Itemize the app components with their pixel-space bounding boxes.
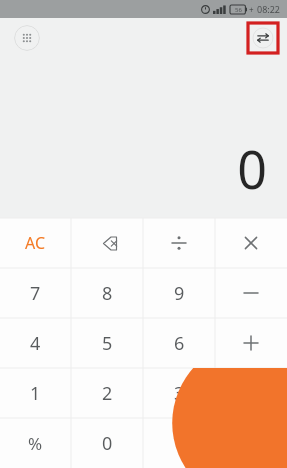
button[interactable]: 2 (71, 368, 143, 418)
staticText: 6 (174, 331, 185, 356)
staticText: AC (25, 232, 46, 254)
button[interactable]: 4 (0, 318, 71, 368)
button[interactable] (215, 268, 287, 318)
button[interactable] (71, 218, 143, 268)
button[interactable]: 6 (143, 318, 215, 368)
button[interactable]: 8 (71, 268, 143, 318)
staticText: 3 (174, 381, 185, 406)
staticText: + (249, 4, 254, 15)
button[interactable]: History (14, 25, 40, 51)
button[interactable]: Unit converter (248, 23, 278, 53)
button[interactable]: Equals (0, 218, 287, 468)
button[interactable] (143, 218, 215, 268)
staticText: 1 (30, 381, 41, 406)
staticText: 0 (102, 431, 113, 456)
button[interactable]: 3 (143, 368, 215, 418)
staticText: 56 (235, 6, 242, 14)
staticText: . (177, 431, 182, 456)
button[interactable]: 7 (0, 268, 71, 318)
staticText: 9 (174, 281, 185, 306)
button[interactable] (215, 318, 287, 368)
button[interactable] (215, 218, 287, 268)
staticText: 0 (237, 133, 267, 204)
staticText: 08:22 (257, 3, 281, 15)
staticText: 8 (102, 281, 113, 306)
button[interactable]: 0 (71, 418, 143, 468)
button[interactable]: 9 (143, 268, 215, 318)
staticText: 4 (30, 331, 41, 356)
staticText: 5 (102, 331, 113, 356)
button[interactable]: % (0, 418, 71, 468)
button[interactable]: 1 (0, 368, 71, 418)
button[interactable]: AC (0, 218, 71, 268)
staticText: 7 (30, 281, 41, 306)
staticText: % (28, 432, 43, 455)
button[interactable]: 5 (71, 318, 143, 368)
staticText: 2 (102, 381, 113, 406)
button[interactable]: . (143, 418, 215, 468)
